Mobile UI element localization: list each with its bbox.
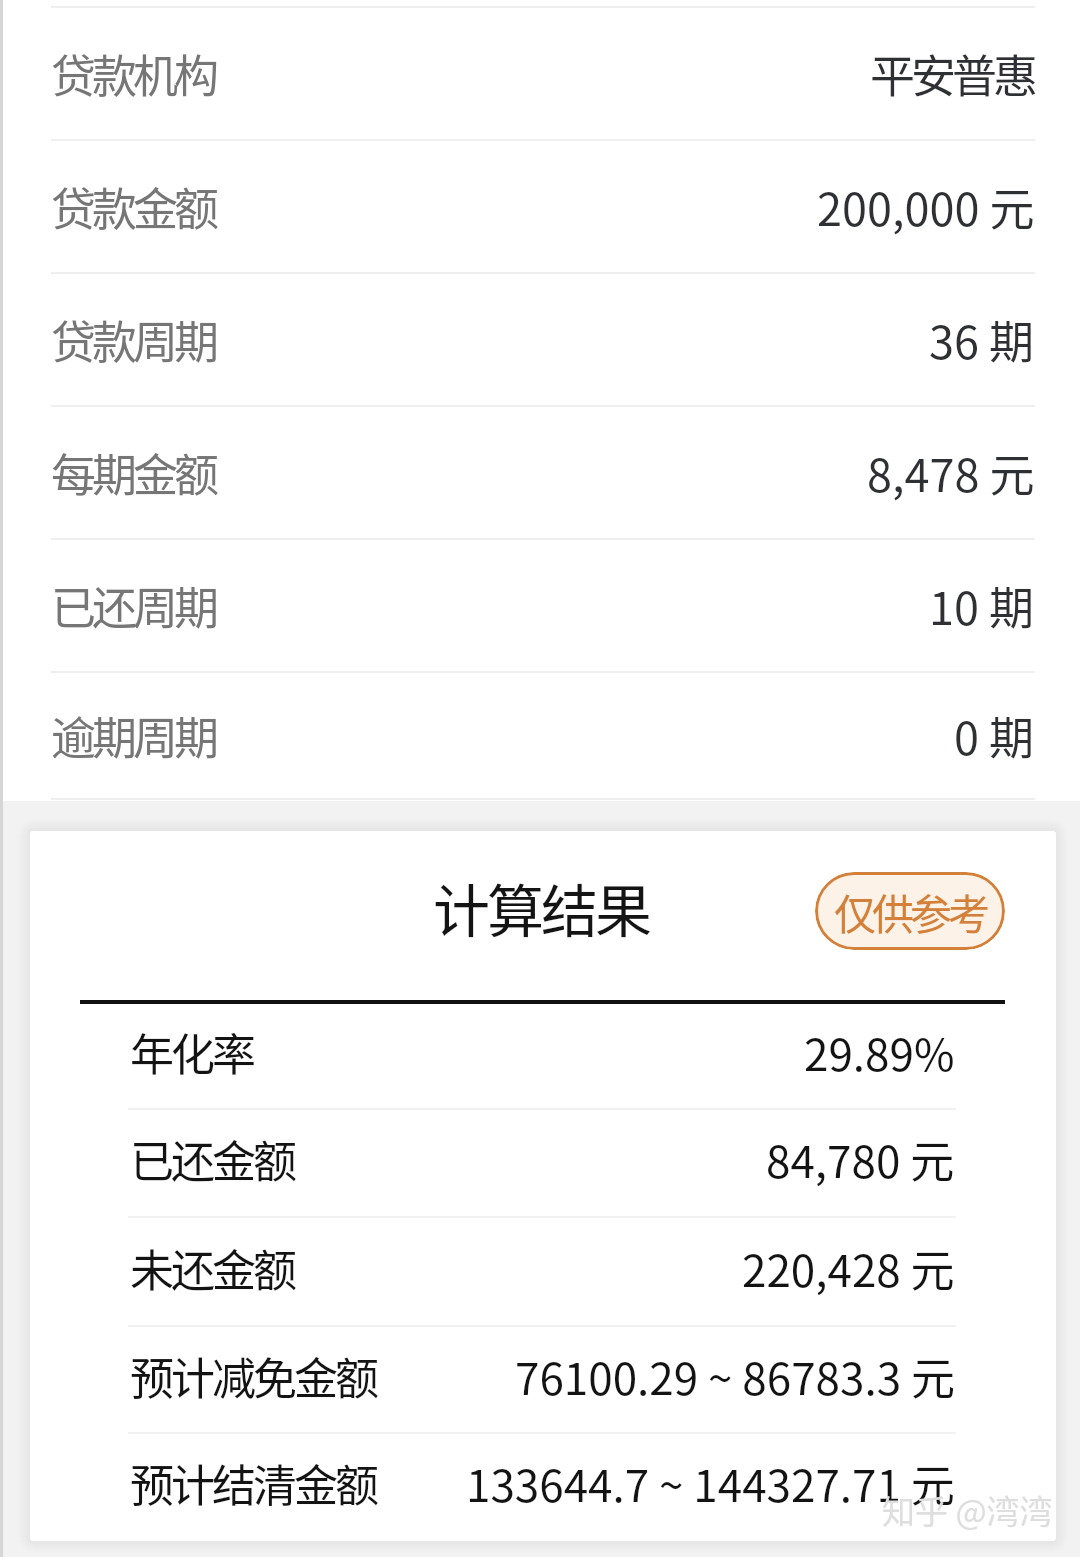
staticText: 0 期 (954, 703, 1035, 768)
staticText: 预计结清金额 (130, 1451, 376, 1515)
staticText: 76100.29 ~ 86783.3 元 (515, 1344, 955, 1408)
staticText: 逾期周期 (51, 703, 216, 768)
button[interactable]: 贷款周期 (0, 274, 1080, 405)
button[interactable]: 年化率 (30, 1004, 1056, 1108)
staticText: 预计减免金额 (130, 1344, 376, 1408)
button[interactable]: 预计减免金额 (30, 1327, 1056, 1432)
button[interactable]: 仅供参考 For reference only (815, 872, 1005, 950)
staticText: 仅供参考 (834, 881, 987, 942)
staticText: 计算结果 (433, 866, 649, 949)
button[interactable]: 已还周期 (0, 540, 1080, 671)
button[interactable]: 已还金额 (30, 1110, 1056, 1216)
staticText: 平安普惠 (870, 41, 1035, 106)
staticText: 知乎 @湾湾 (882, 1486, 1053, 1534)
staticText: 已还金额 (130, 1127, 294, 1191)
staticText: 133644.7 ~ 144327.71 元 (466, 1451, 955, 1515)
staticText: 贷款金额 (51, 174, 216, 239)
staticText: 已还周期 (51, 573, 216, 638)
staticText: 84,780 元 (766, 1127, 955, 1191)
staticText: 200,000 元 (817, 174, 1035, 239)
staticText: 每期金额 (51, 440, 216, 505)
staticText: 220,428 元 (742, 1236, 955, 1300)
staticText: 29.89% (804, 1020, 955, 1084)
button[interactable]: 逾期周期 (0, 673, 1080, 798)
staticText: 年化率 (130, 1020, 253, 1084)
button[interactable]: 未还金额 (30, 1218, 1056, 1325)
button[interactable]: 贷款机构 (0, 8, 1080, 139)
staticText: 8,478 元 (867, 440, 1035, 505)
staticText: 贷款周期 (51, 307, 216, 372)
button[interactable]: 贷款金额 (0, 141, 1080, 272)
staticText: 贷款机构 (51, 41, 216, 106)
button[interactable]: 每期金额 (0, 407, 1080, 538)
button[interactable]: 预计结清金额 (30, 1434, 1056, 1540)
staticText: 未还金额 (130, 1236, 294, 1300)
staticText: 10 期 (929, 573, 1035, 638)
staticText: 36 期 (929, 307, 1035, 372)
